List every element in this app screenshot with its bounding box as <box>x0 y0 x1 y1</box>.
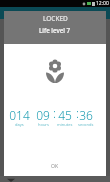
staticText: 09 <box>36 107 50 123</box>
staticText: minutes <box>57 122 73 127</box>
staticText: 45 <box>58 107 72 123</box>
staticText: LOCKED <box>43 14 68 23</box>
staticText: : <box>53 105 56 121</box>
staticText: seconds <box>78 122 94 127</box>
staticText: 12:00 <box>96 0 109 7</box>
staticText: Life level 7 <box>39 26 71 34</box>
staticText: : <box>76 105 79 121</box>
button[interactable]: OK <box>4 155 106 177</box>
staticText: OK <box>51 163 59 170</box>
staticText: 36 <box>79 107 93 123</box>
staticText: 014 <box>9 107 30 123</box>
staticText: days <box>15 122 24 127</box>
staticText: hours <box>38 122 49 127</box>
button[interactable]: Back <box>7 178 15 182</box>
